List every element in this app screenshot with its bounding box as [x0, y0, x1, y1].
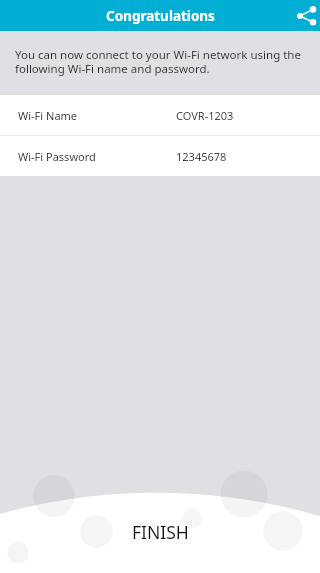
button[interactable]: Wi-Fi Password — [0, 136, 320, 176]
button[interactable]: FINISH — [0, 515, 320, 573]
button[interactable]: Wi-Fi Name — [0, 95, 320, 135]
staticText: COVR-1203 — [176, 108, 320, 123]
staticText: Wi-Fi Name — [18, 108, 78, 123]
staticText: You can now connect to your Wi-Fi networ… — [15, 47, 307, 76]
staticText: 12345678 — [176, 149, 320, 164]
button[interactable]: Share — [297, 6, 317, 26]
staticText: Congratulations — [106, 7, 215, 25]
staticText: Wi-Fi Password — [18, 149, 96, 164]
staticText: FINISH — [132, 520, 189, 544]
